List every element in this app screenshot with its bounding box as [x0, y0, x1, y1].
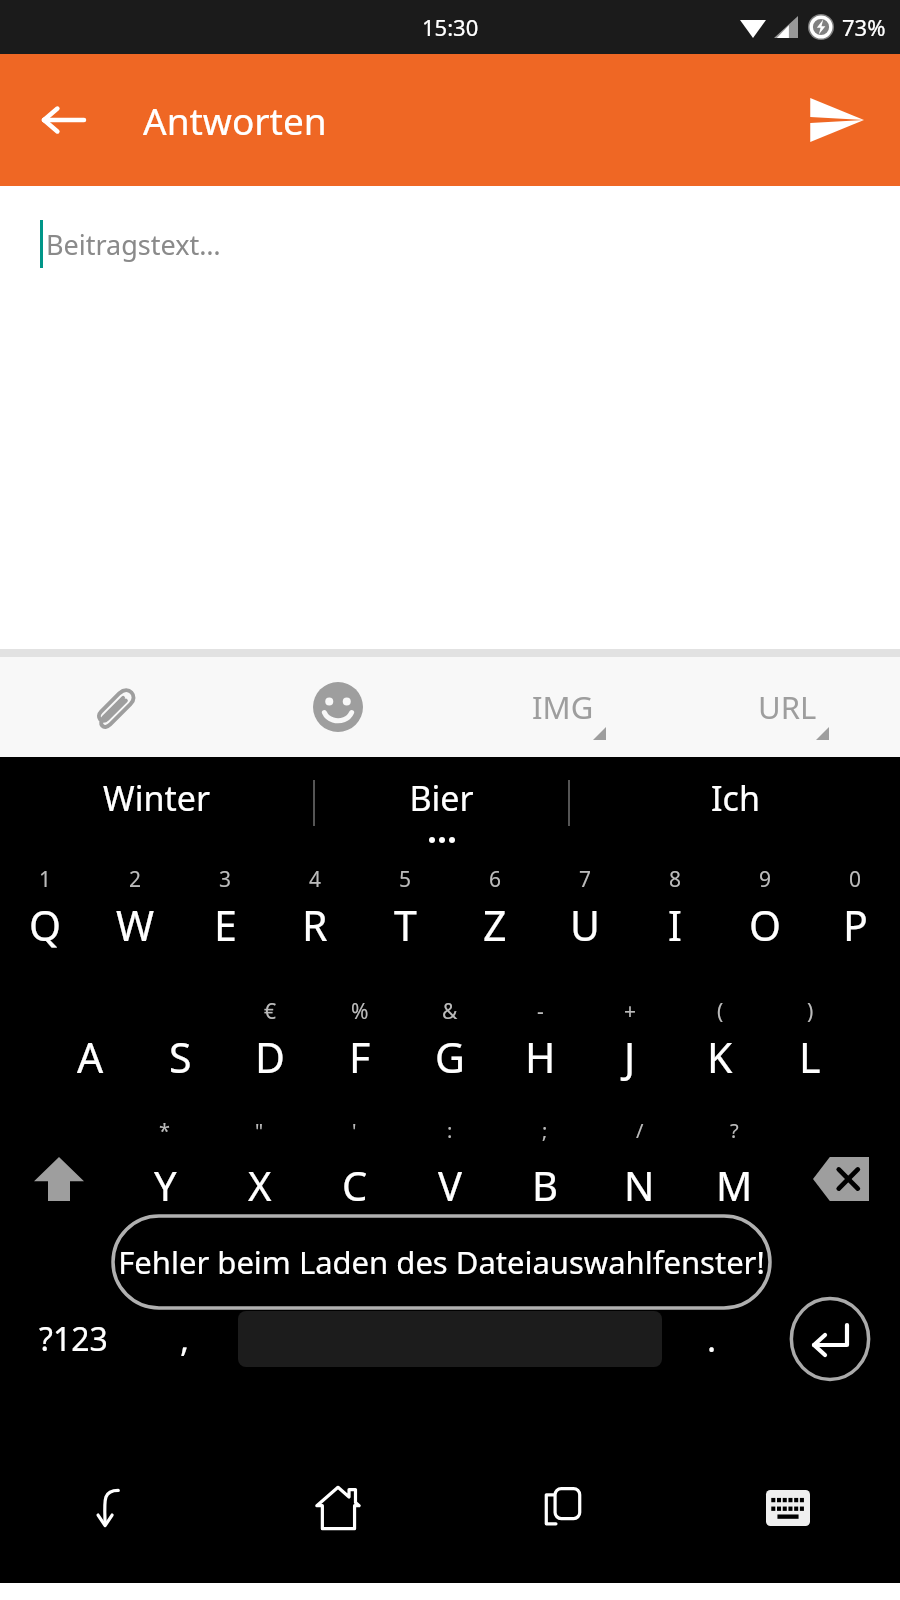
staticText: 3 — [219, 865, 232, 894]
button[interactable]: % — [315, 981, 405, 1113]
button[interactable]: Emoji — [225, 657, 450, 757]
staticText: X — [248, 1158, 272, 1212]
staticText: ? — [730, 1117, 739, 1144]
staticText: O — [749, 897, 782, 953]
staticText: ' — [352, 1117, 357, 1144]
button[interactable]: 1 — [0, 849, 90, 981]
button[interactable]: 0 — [810, 849, 900, 981]
button[interactable]: € — [225, 981, 315, 1113]
staticText: H — [525, 1029, 556, 1085]
staticText: F — [349, 1029, 371, 1085]
staticText: 8 — [669, 865, 682, 894]
button[interactable]: ?123 — [18, 1245, 128, 1433]
button[interactable]: Bier — [315, 757, 568, 849]
button[interactable]: Löschen — [782, 1113, 900, 1245]
staticText: 1 — [39, 865, 52, 894]
button[interactable]: : — [402, 1113, 497, 1245]
staticText: B — [532, 1158, 558, 1212]
button[interactable]: ' — [307, 1113, 402, 1245]
button[interactable]: - — [495, 981, 585, 1113]
button[interactable]: 5 — [360, 849, 450, 981]
staticText: URL — [758, 686, 817, 728]
staticText: Q — [29, 897, 62, 953]
button[interactable]: Eingabe — [788, 1293, 872, 1385]
staticText: C — [342, 1158, 368, 1212]
staticText: 4 — [309, 865, 322, 894]
staticText: I — [668, 897, 682, 953]
button[interactable]: Startbildschirm — [225, 1433, 450, 1583]
staticText: G — [435, 1029, 465, 1085]
staticText: Antworten — [143, 95, 327, 145]
staticText: K — [707, 1029, 733, 1085]
button[interactable]: A — [45, 981, 135, 1113]
button[interactable]: Winter — [0, 757, 313, 849]
staticText: , — [180, 1316, 190, 1362]
staticText: 15:30 — [422, 12, 479, 42]
staticText: A — [77, 1029, 104, 1085]
staticText: R — [302, 897, 328, 953]
button[interactable]: Übersicht — [450, 1433, 675, 1583]
button[interactable]: , — [150, 1245, 220, 1433]
staticText: W — [116, 897, 155, 953]
button[interactable]: 8 — [630, 849, 720, 981]
button[interactable]: 4 — [270, 849, 360, 981]
staticText: Z — [483, 897, 507, 953]
staticText: ) — [807, 997, 814, 1026]
button[interactable]: Zurück — [22, 78, 106, 162]
staticText: 0 — [849, 865, 862, 894]
button[interactable]: * — [118, 1113, 212, 1245]
button[interactable]: ( — [675, 981, 765, 1113]
button[interactable]: Ich — [570, 757, 900, 849]
staticText: ?123 — [39, 1317, 108, 1361]
button[interactable]: ) — [765, 981, 855, 1113]
button[interactable]: Tastatur ausblenden — [0, 1433, 225, 1583]
button[interactable]: S — [135, 981, 225, 1113]
button[interactable]: & — [405, 981, 495, 1113]
staticText: J — [624, 1029, 636, 1085]
button[interactable]: IMG — [450, 657, 675, 757]
staticText: P — [843, 897, 868, 953]
staticText: & — [442, 997, 458, 1026]
button[interactable]: ; — [497, 1113, 592, 1245]
staticText: ( — [717, 997, 724, 1026]
button[interactable]: URL — [675, 657, 900, 757]
staticText: * — [159, 1117, 171, 1144]
staticText: 6 — [489, 865, 502, 894]
button[interactable]: Umschalt — [0, 1113, 118, 1245]
staticText: T — [394, 897, 417, 953]
button[interactable]: 9 — [720, 849, 810, 981]
button[interactable]: Anhang — [0, 657, 225, 757]
button[interactable]: . — [682, 1245, 742, 1433]
staticText: " — [255, 1117, 264, 1144]
staticText: 9 — [759, 865, 772, 894]
button[interactable]: Senden — [792, 76, 880, 164]
button[interactable]: / — [592, 1113, 687, 1245]
button[interactable]: + — [585, 981, 675, 1113]
staticText: L — [799, 1029, 821, 1085]
staticText: U — [570, 897, 600, 953]
button[interactable]: 7 — [540, 849, 630, 981]
button[interactable]: 2 — [90, 849, 180, 981]
staticText: ; — [542, 1117, 548, 1144]
staticText: - — [537, 997, 544, 1026]
staticText: : — [447, 1117, 453, 1144]
staticText: Beitragstext… — [46, 226, 221, 263]
staticText: S — [169, 1029, 192, 1085]
staticText: Fehler beim Laden des Dateiauswahlfenste… — [118, 1241, 765, 1283]
button[interactable]: 3 — [180, 849, 270, 981]
staticText: Winter — [103, 775, 210, 821]
button[interactable]: 6 — [450, 849, 540, 981]
button[interactable]: " — [212, 1113, 307, 1245]
staticText: M — [716, 1158, 753, 1212]
staticText: € — [264, 997, 277, 1026]
button[interactable]: ? — [687, 1113, 782, 1245]
staticText: N — [624, 1158, 655, 1212]
staticText: IMG — [532, 686, 594, 728]
staticText: D — [255, 1029, 285, 1085]
staticText: . — [707, 1316, 717, 1362]
staticText: 5 — [399, 865, 412, 894]
button[interactable]: Eingabemethode wechseln — [675, 1433, 900, 1583]
staticText: / — [636, 1117, 644, 1144]
staticText: 2 — [129, 865, 142, 894]
